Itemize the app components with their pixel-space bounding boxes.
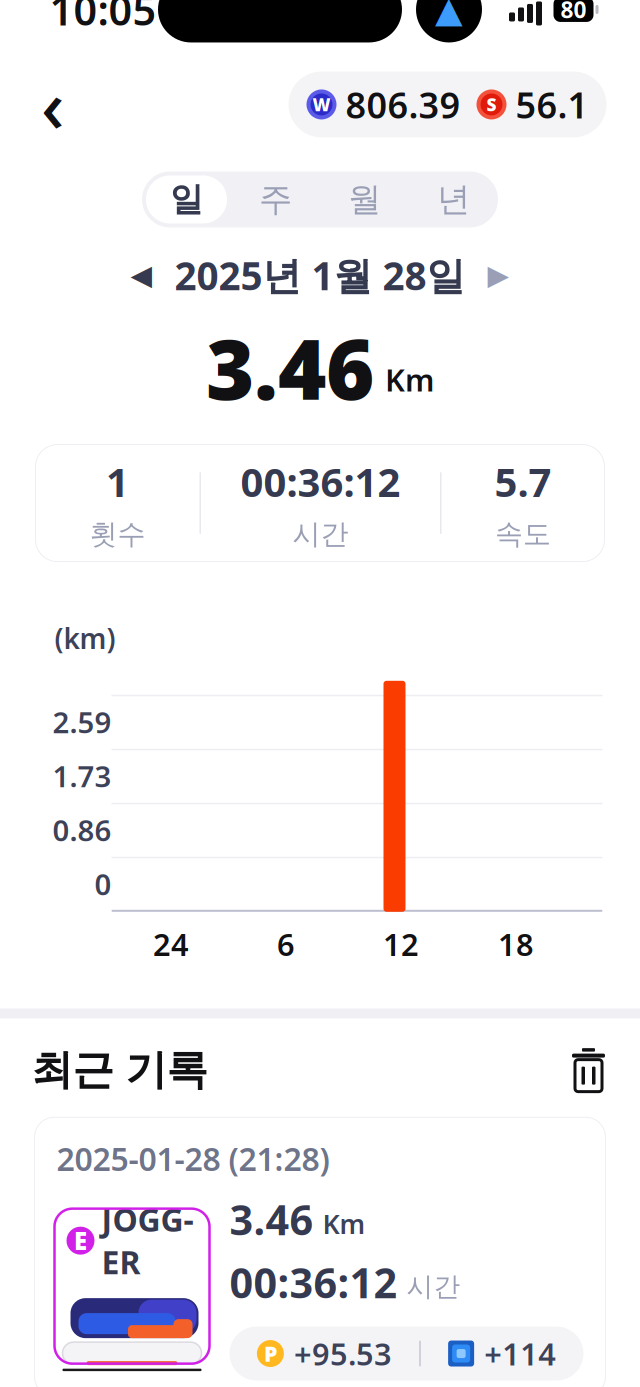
button[interactable]: Next day [475, 252, 521, 298]
staticText: ▶ [487, 259, 509, 291]
staticText: 00:36:12 [229, 1255, 397, 1309]
button[interactable]: Previous day [118, 252, 164, 298]
staticText: 2.59 [52, 702, 111, 741]
button[interactable]: 일 [142, 171, 231, 227]
staticText: 2025년 1월 28일 [174, 249, 465, 301]
staticText: (km) [54, 620, 115, 657]
staticText: 6 [277, 924, 295, 964]
staticText: 56.1 [515, 81, 588, 128]
staticText: 12 [383, 924, 419, 964]
staticText: 18 [498, 924, 534, 964]
staticText: P [264, 1339, 277, 1368]
staticText: 년 [437, 179, 470, 220]
staticText: 0 [94, 864, 111, 903]
staticText: 3.46 [206, 313, 374, 423]
staticText: ▲ [435, 0, 463, 30]
staticText: S [486, 93, 496, 116]
staticText: 5.7 [494, 455, 551, 508]
staticText: 3.46 [229, 1192, 313, 1247]
button[interactable]: 월 [320, 171, 409, 227]
staticText: +114 [484, 1333, 556, 1374]
staticText: 속도 [495, 517, 551, 551]
staticText: 80 [560, 0, 586, 24]
staticText: 00:36:12 [240, 455, 400, 508]
staticText: 최근 기록 [31, 1044, 207, 1095]
staticText: 월 [348, 179, 381, 220]
button[interactable]: 2025-01-28 (21:28) [34, 1117, 605, 1387]
staticText: Km [322, 1206, 365, 1241]
staticText: 횟수 [89, 517, 145, 551]
button[interactable]: 주 [231, 171, 320, 227]
staticText: 2025-01-28 (21:28) [56, 1137, 329, 1180]
staticText: E [74, 1225, 87, 1257]
staticText: 806.39 [345, 81, 460, 128]
staticText: ◀ [130, 259, 152, 291]
staticText: 주 [259, 179, 292, 220]
staticText: Km [385, 359, 434, 400]
staticText: 시간 [292, 517, 348, 551]
button[interactable]: Back [23, 75, 81, 133]
button[interactable]: Delete records [566, 1045, 610, 1095]
button[interactable]: W [288, 72, 606, 137]
staticText: ‹ [41, 57, 64, 152]
staticText: 10:05 [49, 0, 156, 37]
button[interactable]: 년 [409, 171, 498, 227]
staticText: 24 [153, 924, 189, 964]
staticText: +95.53 [294, 1333, 392, 1374]
staticText: JOGGER [101, 1198, 193, 1283]
staticText: 1.73 [52, 756, 111, 795]
staticText: W [312, 93, 330, 116]
staticText: 1 [106, 455, 129, 508]
staticText: 시간 [406, 1270, 460, 1303]
staticText: 0.86 [52, 810, 111, 849]
staticText: 일 [170, 179, 203, 220]
